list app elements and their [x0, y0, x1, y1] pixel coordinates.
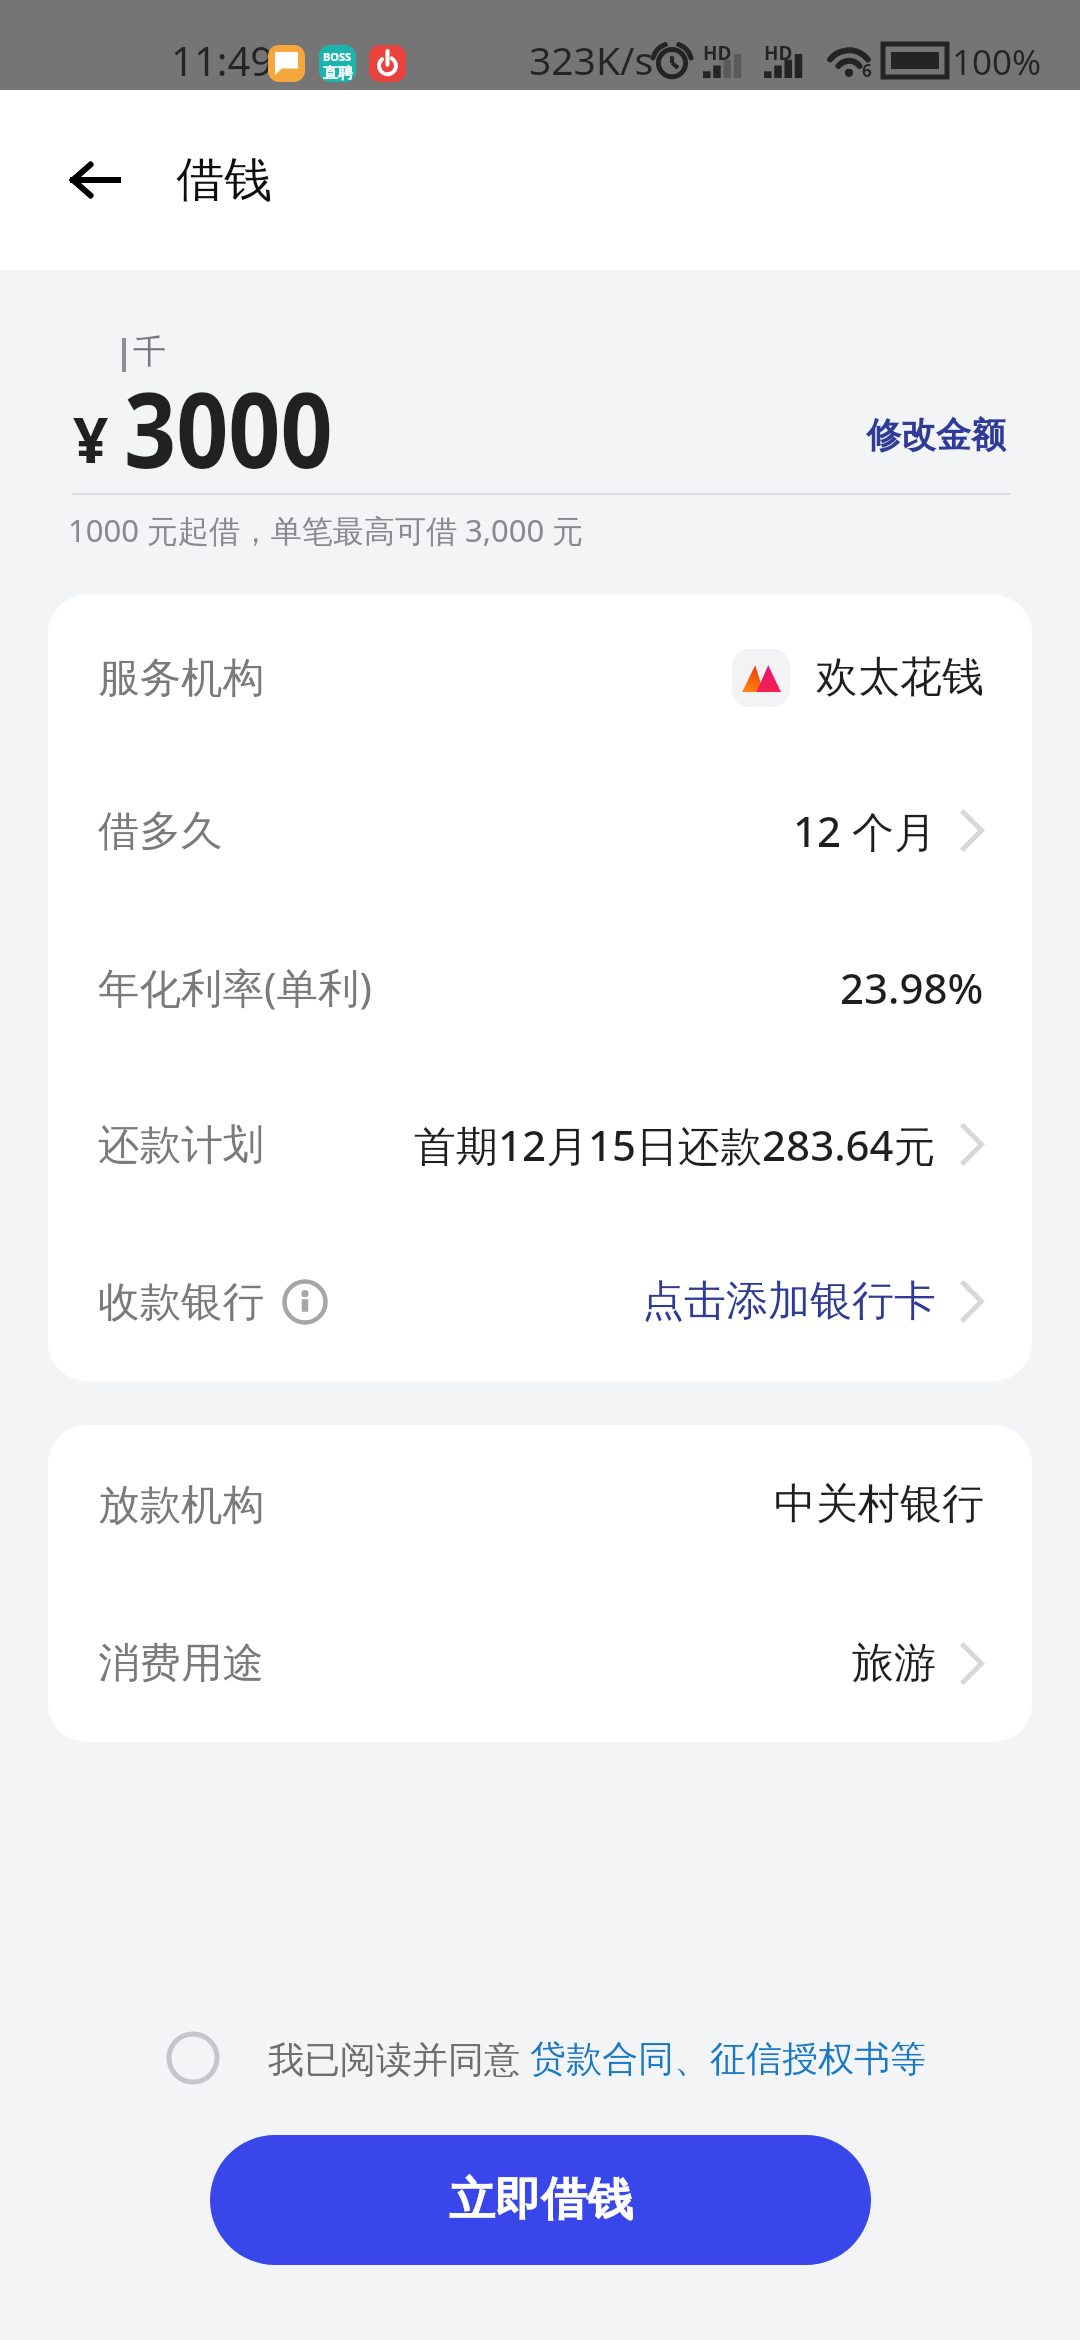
staticText: HD — [703, 40, 732, 66]
staticText: 收款银行 — [98, 1276, 264, 1328]
staticText: 放款机构 — [98, 1479, 264, 1531]
button[interactable]: 放款机构 — [48, 1425, 1032, 1584]
button[interactable]: 收款银行 — [48, 1223, 1032, 1380]
staticText: 6 — [862, 59, 872, 82]
staticText: 贷款合同、征信授权书等 — [530, 2036, 926, 2081]
button[interactable]: 消费用途 — [48, 1584, 1032, 1742]
staticText: 我已阅读并同意 — [268, 2034, 530, 2083]
staticText: 点击添加银行卡 — [642, 1275, 936, 1328]
button[interactable]: 修改金额 — [856, 403, 1016, 467]
staticText: 1000 元起借，单笔最高可借 3,000 元 — [68, 509, 584, 551]
staticText: 修改金额 — [866, 413, 1006, 457]
staticText: 还款计划 — [98, 1119, 264, 1171]
button[interactable]: 年化利率(单利) — [48, 909, 1032, 1066]
staticText: ¥ — [73, 397, 109, 481]
staticText: HD — [764, 40, 793, 66]
staticText: 千 — [133, 331, 166, 373]
button[interactable]: 贷款合同、征信授权书等 — [530, 2036, 926, 2081]
staticText: 服务机构 — [98, 652, 264, 704]
staticText: 23.98% — [840, 959, 984, 1016]
staticText: 100% — [952, 38, 1042, 86]
staticText: 消费用途 — [98, 1637, 264, 1689]
staticText: 年化利率(单利) — [98, 959, 372, 1016]
staticText: 借多久 — [98, 805, 223, 857]
staticText: 借钱 — [176, 150, 272, 210]
button[interactable]: Agree to terms — [166, 2031, 220, 2085]
staticText: 欢太花钱 — [816, 651, 984, 704]
staticText: BOSS — [323, 49, 352, 64]
staticText: 立即借钱 — [449, 2171, 633, 2229]
staticText: 323K/s — [529, 33, 654, 86]
button[interactable]: 还款计划 — [48, 1066, 1032, 1223]
staticText: 3000 — [124, 357, 333, 499]
button[interactable]: 立即借钱 — [210, 2135, 871, 2265]
staticText: 中关村银行 — [774, 1478, 984, 1531]
staticText: 11:49 — [171, 33, 274, 87]
button[interactable]: 服务机构 — [48, 595, 1032, 752]
staticText: 12 个月 — [793, 802, 936, 859]
staticText: 首期12月15日还款283.64元 — [414, 1116, 936, 1173]
staticText: 旅游 — [852, 1637, 936, 1690]
staticText: 直聘 — [323, 64, 353, 82]
button[interactable]: Back — [48, 134, 140, 226]
button[interactable]: 借多久 — [48, 752, 1032, 909]
